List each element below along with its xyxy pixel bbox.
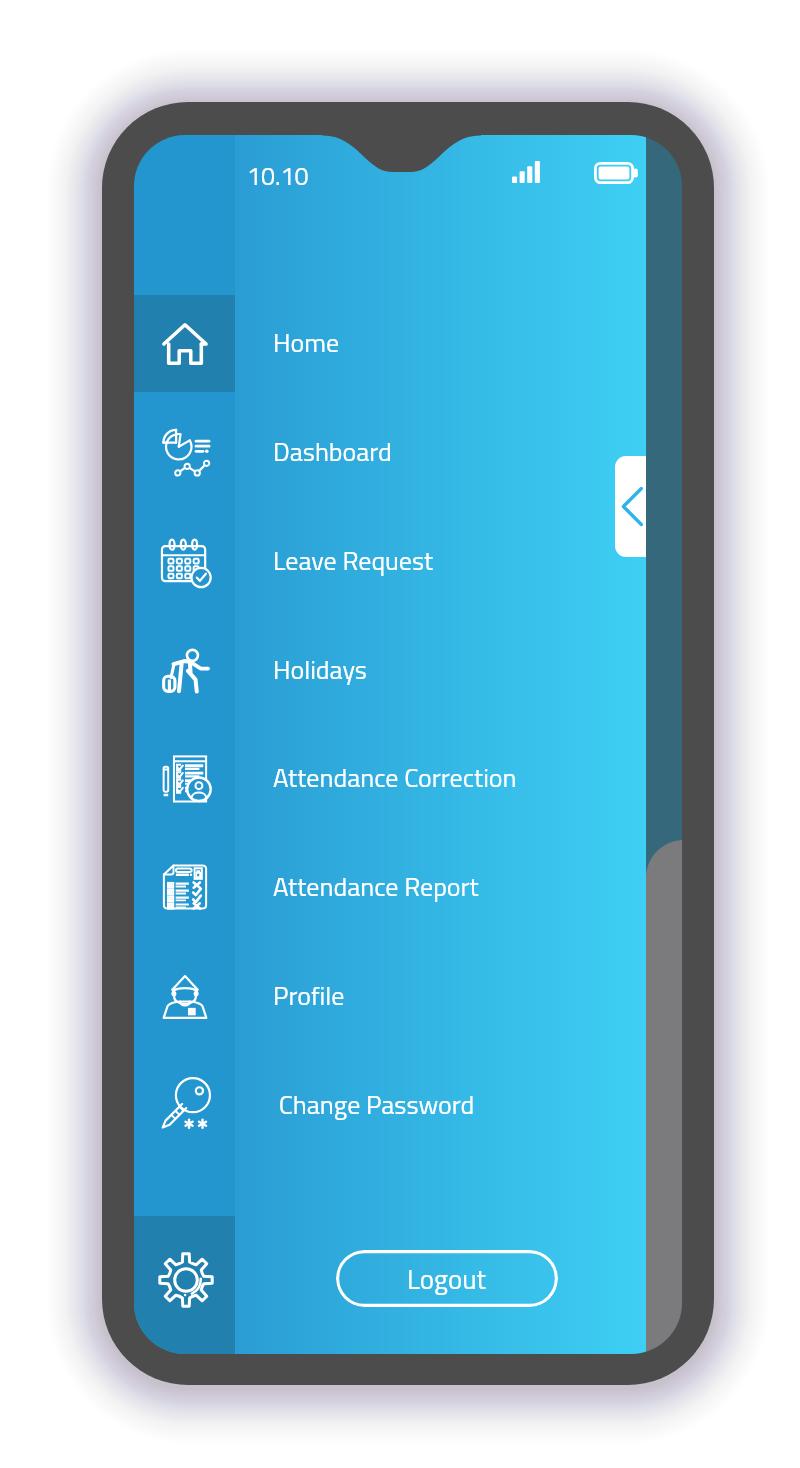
button[interactable]: Collapse menu xyxy=(615,456,646,557)
button[interactable]: Settings xyxy=(134,1216,235,1354)
staticText: Profile xyxy=(273,976,345,1016)
button[interactable]: Attendance Report xyxy=(134,833,646,941)
staticText: Home xyxy=(273,323,340,363)
button[interactable]: Logout xyxy=(336,1250,558,1307)
button[interactable]: Holidays xyxy=(134,616,646,724)
staticText: Dashboard xyxy=(273,432,392,472)
staticText: Holidays xyxy=(273,650,367,690)
staticText: Change Password xyxy=(273,1085,475,1125)
staticText: Leave Request xyxy=(273,541,434,581)
button[interactable]: Dashboard xyxy=(134,398,646,506)
button[interactable]: Attendance Correction xyxy=(134,724,646,832)
staticText: Attendance Report xyxy=(273,867,479,907)
staticText: 10.10 xyxy=(247,157,309,195)
staticText: Attendance Correction xyxy=(273,758,517,798)
button[interactable]: Change Password xyxy=(134,1051,646,1159)
button[interactable]: Leave Request xyxy=(134,507,646,615)
button[interactable]: Profile xyxy=(134,942,646,1050)
button[interactable]: Home xyxy=(134,289,646,397)
staticText: Logout xyxy=(407,1258,487,1299)
